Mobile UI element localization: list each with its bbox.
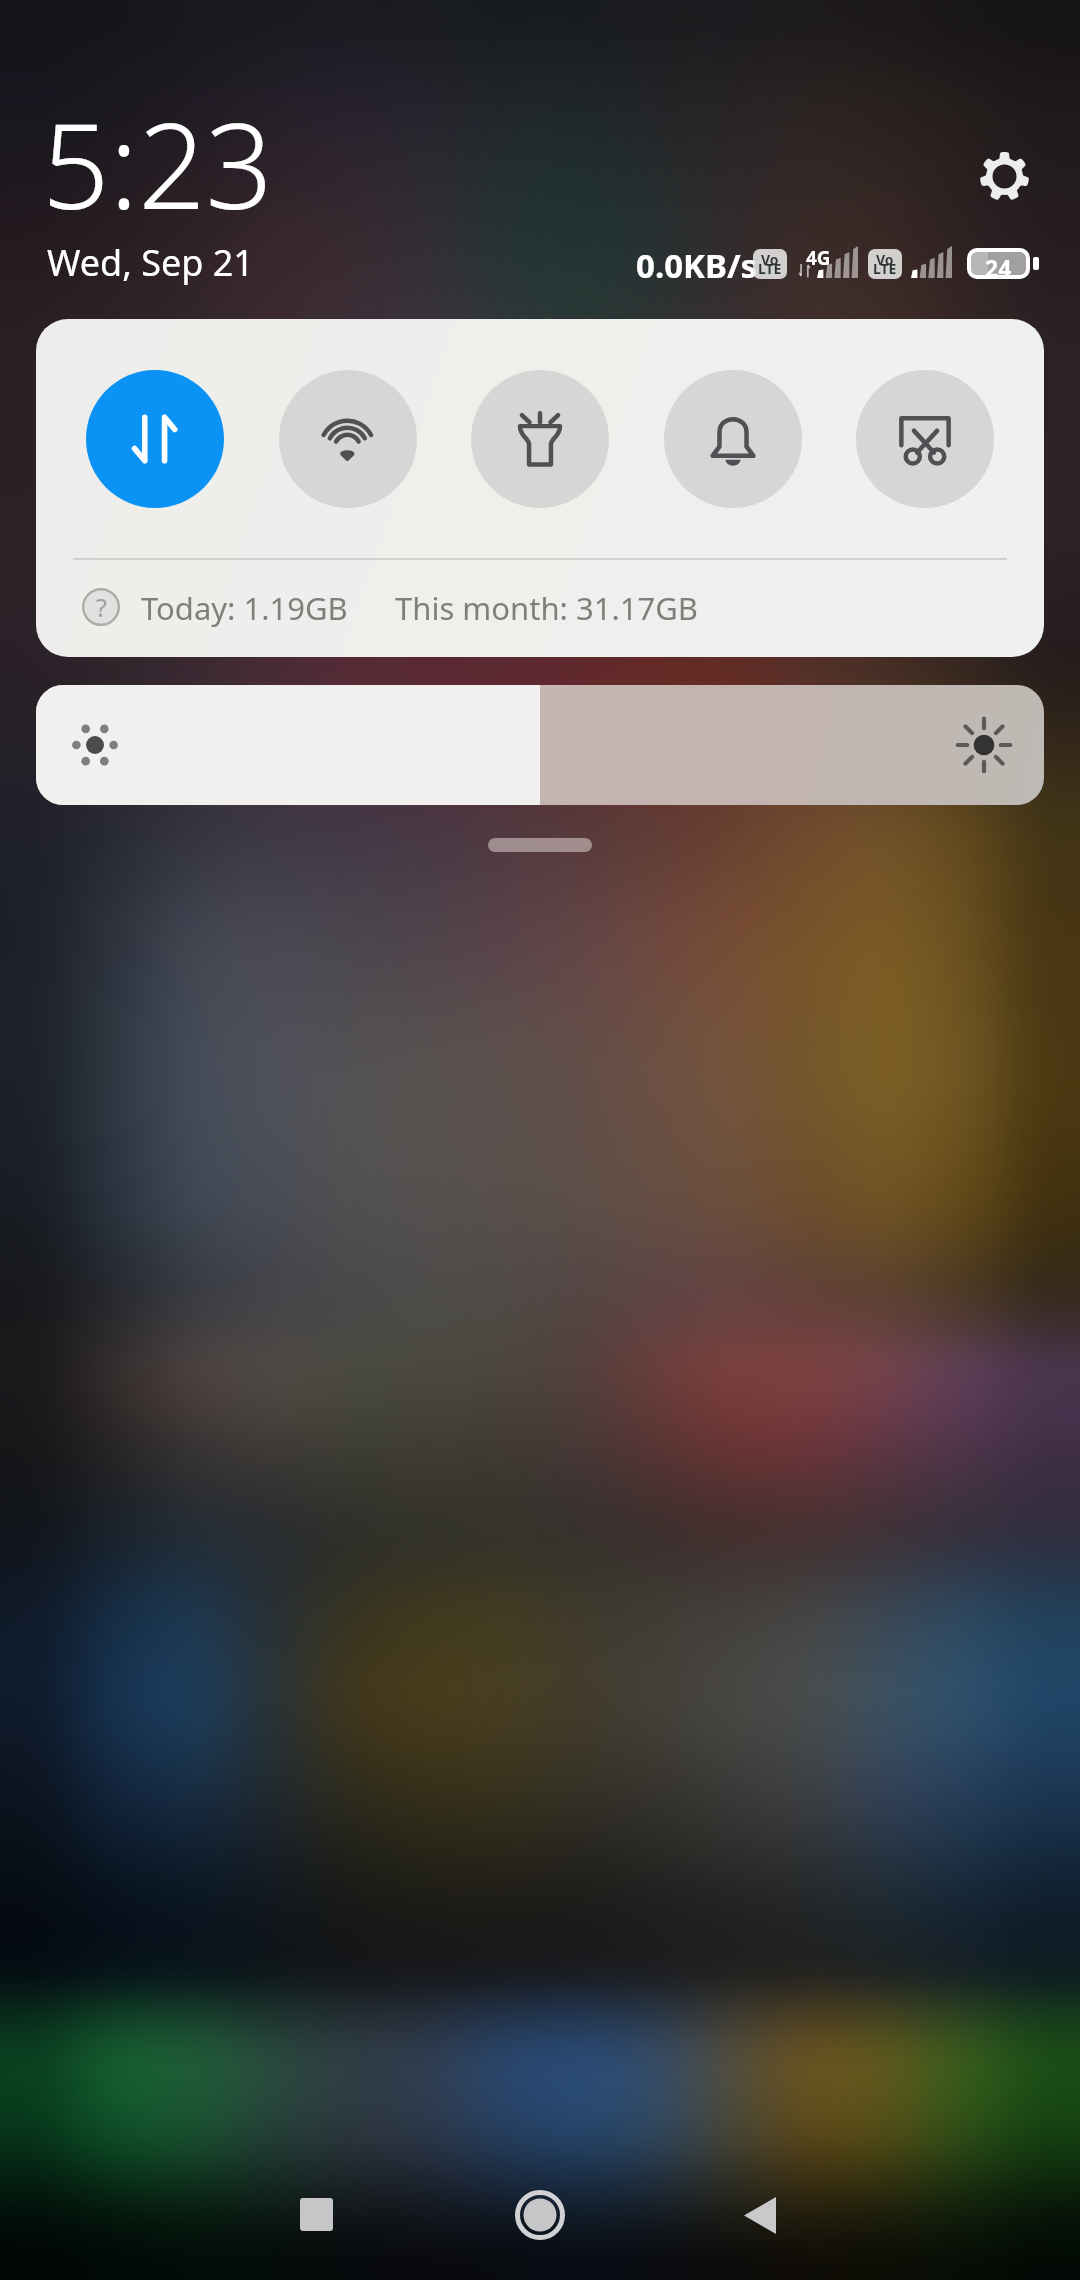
staticText: LTE <box>758 259 782 278</box>
button[interactable]: Screenshot <box>856 370 994 508</box>
staticText: 4G <box>806 245 831 271</box>
button[interactable]: Home <box>495 2170 585 2260</box>
button[interactable]: Brightness <box>36 685 1044 805</box>
button[interactable]: Recents <box>271 2169 361 2259</box>
button[interactable]: Settings <box>960 132 1048 220</box>
staticText: Today: 1.19GB <box>141 587 348 629</box>
staticText: 5:23 <box>42 83 273 244</box>
staticText: This month: 31.17GB <box>395 587 698 629</box>
button[interactable]: Do not disturb <box>664 370 802 508</box>
staticText: 24 <box>985 252 1012 275</box>
staticText: LTE <box>873 259 897 278</box>
staticText: 0.0KB/s <box>636 243 758 288</box>
button[interactable]: Flashlight <box>471 370 609 508</box>
staticText: Vo <box>761 250 779 269</box>
staticText: Wed, Sep 21 <box>47 238 254 287</box>
button[interactable]: Wi-Fi <box>279 370 417 508</box>
button[interactable]: Back <box>715 2170 805 2260</box>
button[interactable]: Mobile data <box>86 370 224 508</box>
staticText: Vo <box>876 250 894 269</box>
staticText: ? <box>96 590 107 624</box>
